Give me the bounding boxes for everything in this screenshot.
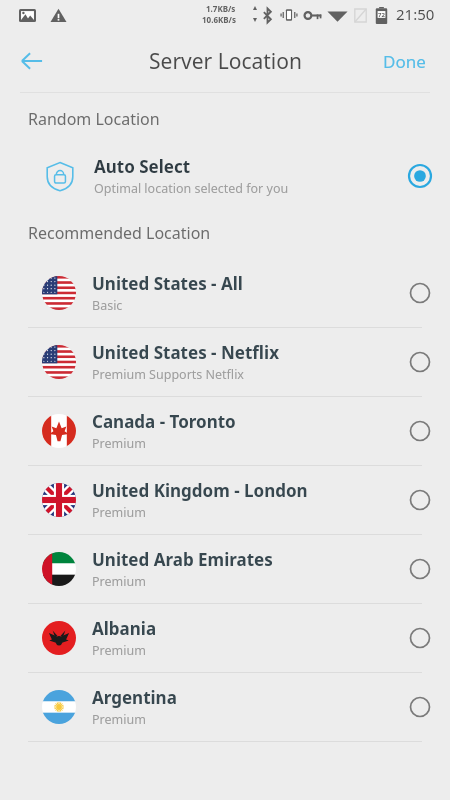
staticText: 10.6KB/s [202,14,236,25]
button[interactable]: United Arab Emirates [0,535,450,603]
staticText: United Arab Emirates [92,548,273,571]
button[interactable]: Done [383,50,426,73]
button[interactable]: Argentina [0,673,450,741]
staticText: Random Location [28,108,160,130]
staticText: Premium [92,435,146,452]
staticText: United States - Netflix [92,341,279,364]
staticText: Premium [92,573,146,590]
button[interactable]: United States - All [0,259,450,327]
staticText: 21:50 [396,4,435,24]
staticText: Canada - Toronto [92,410,236,433]
staticText: Argentina [92,686,177,709]
staticText: United States - All [92,272,243,295]
button[interactable]: United Kingdom - London [0,466,450,534]
staticText: Recommended Location [28,222,211,244]
staticText: Auto Select [94,155,191,178]
staticText: 72 [378,11,385,19]
staticText: Premium [92,504,146,521]
staticText: Basic [92,297,123,314]
button[interactable]: Back [8,37,56,85]
staticText: United Kingdom - London [92,479,308,502]
staticText: Premium [92,711,146,728]
button[interactable]: Auto Select [0,145,450,207]
staticText: Premium [92,642,146,659]
staticText: Albania [92,617,157,640]
button[interactable]: Canada - Toronto [0,397,450,465]
button[interactable]: Albania [0,604,450,672]
staticText: Server Location [149,47,302,76]
button[interactable]: United States - Netflix [0,328,450,396]
staticText: Done [383,50,426,73]
staticText: Premium Supports Netflix [92,366,244,383]
staticText: 1.7KB/s [206,3,236,14]
staticText: Optimal location selected for you [94,180,289,197]
